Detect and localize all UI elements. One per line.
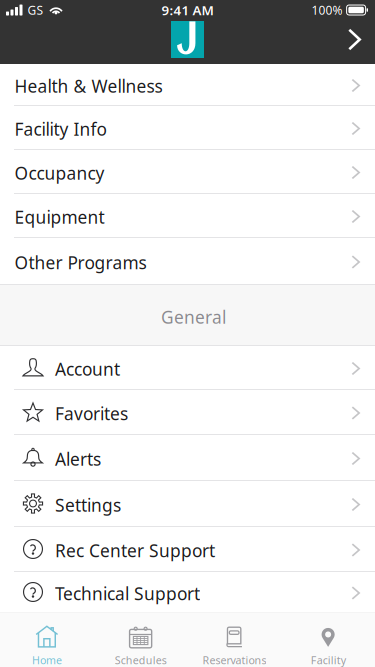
staticText: Health & Wellness bbox=[14, 74, 162, 97]
staticText: Schedules bbox=[115, 653, 167, 667]
button[interactable]: Equipment bbox=[0, 194, 375, 237]
staticText: Rec Center Support bbox=[55, 539, 215, 562]
button[interactable]: Alerts bbox=[0, 435, 375, 480]
button[interactable]: Other Programs bbox=[0, 238, 375, 284]
staticText: Reservations bbox=[202, 653, 266, 667]
button[interactable]: Home bbox=[0, 612, 94, 667]
button[interactable]: Forward bbox=[334, 20, 375, 64]
staticText: Account bbox=[55, 357, 120, 380]
staticText: Settings bbox=[55, 493, 121, 516]
button[interactable]: Account bbox=[0, 346, 375, 389]
staticText: 100% bbox=[312, 2, 343, 18]
button[interactable]: Favorites bbox=[0, 390, 375, 434]
staticText: 9:41 AM bbox=[162, 1, 214, 19]
staticText: Facility Info bbox=[14, 117, 106, 140]
staticText: Technical Support bbox=[55, 582, 200, 605]
button[interactable]: Technical Support bbox=[0, 572, 375, 612]
staticText: Facility bbox=[311, 653, 346, 667]
button[interactable]: Reservations bbox=[187, 612, 281, 667]
button[interactable]: Occupancy bbox=[0, 150, 375, 193]
button[interactable]: Facility Info bbox=[0, 106, 375, 149]
button[interactable]: Schedules bbox=[94, 612, 188, 667]
staticText: General bbox=[161, 305, 226, 328]
button[interactable]: Settings bbox=[0, 481, 375, 526]
staticText: Equipment bbox=[14, 205, 104, 228]
button[interactable]: Facility bbox=[281, 612, 375, 667]
staticText: Occupancy bbox=[14, 161, 104, 184]
button[interactable]: Rec Center Support bbox=[0, 527, 375, 571]
staticText: Home bbox=[32, 653, 62, 667]
staticText: Alerts bbox=[55, 447, 101, 470]
button[interactable]: Health & Wellness bbox=[0, 64, 375, 105]
staticText: Other Programs bbox=[14, 251, 146, 274]
staticText: GS bbox=[27, 2, 43, 18]
staticText: Favorites bbox=[55, 402, 128, 425]
